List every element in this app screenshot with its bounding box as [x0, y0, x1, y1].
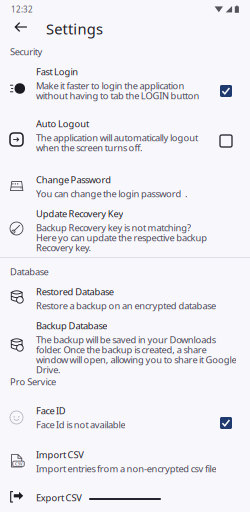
staticText: Database	[10, 265, 49, 278]
staticText: without having to tab the LOGIN button	[36, 89, 200, 102]
button[interactable]: Backup Database	[0, 0, 250, 57]
staticText: Face ID	[36, 404, 66, 417]
button[interactable]: Face ID	[0, 0, 250, 27]
staticText: folder. Once the backup is created, a sh…	[36, 343, 207, 356]
staticText: Export CSV	[36, 491, 82, 504]
staticText: Drive.	[36, 363, 61, 376]
staticText: Update Recovery Key	[36, 207, 123, 220]
staticText: Backup Recovery key is not matching?	[36, 221, 191, 234]
button[interactable]: Restored Database	[0, 0, 250, 27]
staticText: Security	[10, 45, 43, 58]
staticText: 12:32	[11, 4, 33, 15]
staticText: Here yo can update the respective backup	[36, 231, 207, 244]
staticText: Fast Login	[36, 65, 78, 78]
staticText: The application will automatically logou…	[36, 131, 198, 144]
staticText: Pro Service	[10, 375, 56, 388]
button[interactable]: Auto Logout	[0, 0, 250, 37]
staticText: Restored Database	[36, 285, 114, 298]
staticText: when the screen turns off.	[36, 141, 143, 154]
staticText: Change Password	[36, 173, 111, 186]
button[interactable]: Export CSV	[0, 0, 250, 18]
staticText: CSV	[15, 461, 22, 466]
button[interactable]: Change Password	[0, 0, 250, 27]
staticText: Recovery key.	[36, 241, 92, 254]
staticText: window will open, allowing you to share …	[36, 353, 236, 366]
staticText: Import CSV	[36, 448, 84, 461]
staticText: Auto Logout	[36, 117, 89, 130]
staticText: Backup Database	[36, 319, 107, 332]
staticText: Import entries from a non-encrypted csv …	[36, 462, 216, 475]
staticText: Make it faster to login the application	[36, 79, 184, 92]
staticText: You can change the login password .	[36, 187, 188, 200]
button[interactable]: CSV	[0, 0, 250, 27]
staticText: Restore a backup on an encrypted databas…	[36, 299, 216, 312]
button[interactable]: Update Recovery Key	[0, 0, 250, 47]
button[interactable]: Fast Login	[0, 0, 250, 37]
button[interactable]: Back	[8, 14, 34, 40]
staticText: Settings	[46, 19, 103, 38]
staticText: The backup will be saved in your Downloa…	[36, 333, 216, 346]
staticText: Face Id is not available	[36, 418, 125, 431]
